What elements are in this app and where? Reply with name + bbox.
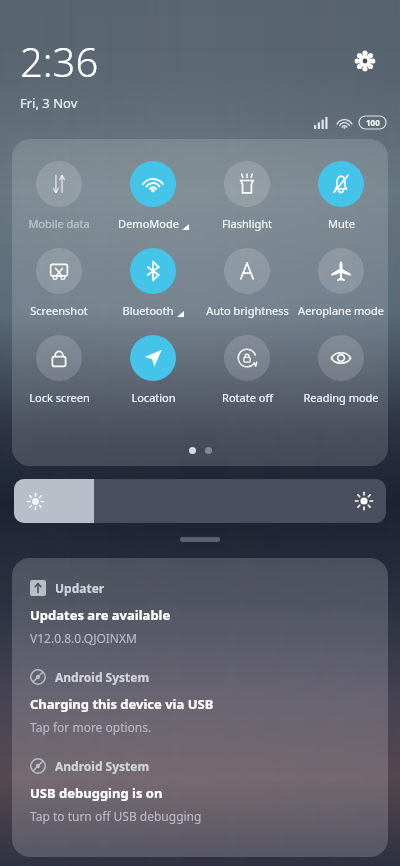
button[interactable]: Lock screen bbox=[12, 335, 106, 405]
button[interactable]: Screenshot bbox=[12, 248, 106, 318]
button[interactable]: Android System bbox=[30, 669, 372, 735]
staticText: Android System bbox=[55, 669, 150, 685]
staticText: Reading mode bbox=[303, 390, 379, 405]
button[interactable]: Location bbox=[106, 335, 200, 405]
staticText: 2:36 bbox=[20, 34, 99, 88]
staticText: DemoMode bbox=[118, 216, 179, 231]
staticText: Updater bbox=[55, 580, 105, 596]
button[interactable]: Auto brightness bbox=[200, 248, 294, 318]
staticText: Android System bbox=[55, 758, 150, 774]
staticText: Mobile data bbox=[28, 216, 90, 231]
staticText: Screenshot bbox=[30, 303, 88, 318]
staticText: V12.0.8.0.QJOINXM bbox=[30, 630, 137, 646]
staticText: Rotate off bbox=[222, 390, 273, 405]
staticText: Bluetooth bbox=[122, 303, 174, 318]
staticText: Updates are available bbox=[30, 606, 171, 624]
button[interactable]: Mute bbox=[294, 161, 388, 231]
button[interactable]: DemoMode bbox=[106, 161, 200, 231]
staticText: Tap to turn off USB debugging bbox=[30, 808, 202, 824]
button[interactable]: Mobile data bbox=[12, 161, 106, 231]
staticText: Auto brightness bbox=[206, 303, 289, 318]
staticText: Lock screen bbox=[29, 390, 90, 405]
staticText: Charging this device via USB bbox=[30, 695, 214, 713]
staticText: Flashlight bbox=[222, 216, 272, 231]
button[interactable]: Updater bbox=[30, 580, 372, 646]
button[interactable]: Flashlight bbox=[200, 161, 294, 231]
button[interactable]: Android System bbox=[30, 758, 372, 824]
button[interactable]: Rotate off bbox=[200, 335, 294, 405]
staticText: Mute bbox=[328, 216, 355, 231]
button[interactable]: Brightness bbox=[14, 479, 386, 523]
staticText: USB debugging is on bbox=[30, 784, 163, 802]
button[interactable]: Settings bbox=[348, 44, 382, 78]
button[interactable]: Reading mode bbox=[294, 335, 388, 405]
staticText: Tap for more options. bbox=[30, 719, 152, 735]
staticText: Aeroplane mode bbox=[298, 303, 384, 318]
button[interactable]: Bluetooth bbox=[106, 248, 200, 318]
button[interactable]: Aeroplane mode bbox=[294, 248, 388, 318]
staticText: 100 bbox=[366, 117, 380, 128]
staticText: Fri, 3 Nov bbox=[20, 94, 78, 112]
staticText: Location bbox=[131, 390, 176, 405]
